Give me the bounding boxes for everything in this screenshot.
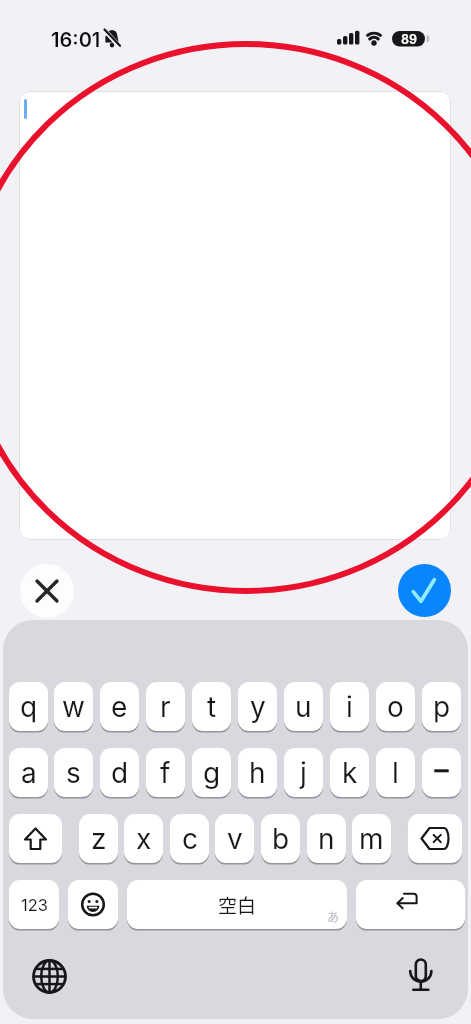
staticText: r	[160, 690, 171, 724]
staticText: i	[346, 690, 353, 724]
button[interactable]: i	[330, 682, 369, 731]
staticText: j	[300, 756, 307, 790]
button[interactable]: j	[284, 748, 323, 797]
button[interactable]	[408, 814, 462, 863]
staticText: o	[387, 690, 404, 724]
button[interactable]: q	[9, 682, 48, 731]
button[interactable]: s	[54, 748, 93, 797]
button[interactable]: e	[100, 682, 139, 731]
staticText: d	[111, 756, 129, 790]
button[interactable]: y	[238, 682, 277, 731]
button[interactable]	[68, 880, 118, 929]
button[interactable]	[422, 748, 461, 797]
button[interactable]: k	[330, 748, 369, 797]
staticText: k	[342, 756, 358, 790]
staticText: 89	[401, 32, 417, 47]
staticText: a	[21, 756, 37, 790]
button[interactable]: v	[215, 814, 254, 863]
staticText: x	[136, 822, 152, 856]
staticText: u	[295, 690, 312, 724]
button[interactable]: c	[170, 814, 209, 863]
button[interactable]: l	[376, 748, 415, 797]
button[interactable]: p	[422, 682, 461, 731]
button[interactable]: x	[124, 814, 163, 863]
button[interactable]	[356, 880, 465, 929]
staticText: e	[111, 690, 128, 724]
staticText: n	[318, 822, 335, 856]
staticText: s	[66, 756, 81, 790]
staticText: f	[160, 756, 171, 790]
staticText: h	[249, 756, 266, 790]
button[interactable]	[398, 564, 451, 617]
button[interactable]: r	[146, 682, 185, 731]
staticText: l	[392, 756, 399, 790]
staticText: あ	[327, 908, 340, 925]
button[interactable]: m	[352, 814, 391, 863]
button[interactable]: t	[192, 682, 231, 731]
button[interactable]: d	[100, 748, 139, 797]
button[interactable]: b	[261, 814, 300, 863]
staticText: w	[62, 690, 85, 724]
button[interactable]: 123	[9, 880, 59, 929]
staticText: c	[182, 822, 198, 856]
button[interactable]: 空白	[127, 880, 347, 929]
button[interactable]: g	[192, 748, 231, 797]
staticText: q	[20, 690, 38, 724]
staticText: z	[91, 822, 107, 856]
staticText: b	[272, 822, 290, 856]
staticText: g	[203, 756, 221, 790]
button[interactable]: z	[79, 814, 118, 863]
button[interactable]: f	[146, 748, 185, 797]
staticText: 空白	[218, 891, 257, 919]
button[interactable]: u	[284, 682, 323, 731]
staticText: 123	[21, 895, 48, 915]
staticText: p	[433, 690, 451, 724]
staticText: m	[359, 822, 384, 856]
button[interactable]: h	[238, 748, 277, 797]
button[interactable]: w	[54, 682, 93, 731]
staticText: y	[250, 690, 266, 724]
staticText: 16:01	[51, 28, 101, 52]
staticText: t	[207, 690, 217, 724]
button[interactable]: o	[376, 682, 415, 731]
button[interactable]: a	[9, 748, 48, 797]
button[interactable]	[9, 814, 62, 863]
button[interactable]	[20, 564, 74, 618]
button[interactable]: n	[307, 814, 346, 863]
staticText: v	[227, 822, 243, 856]
